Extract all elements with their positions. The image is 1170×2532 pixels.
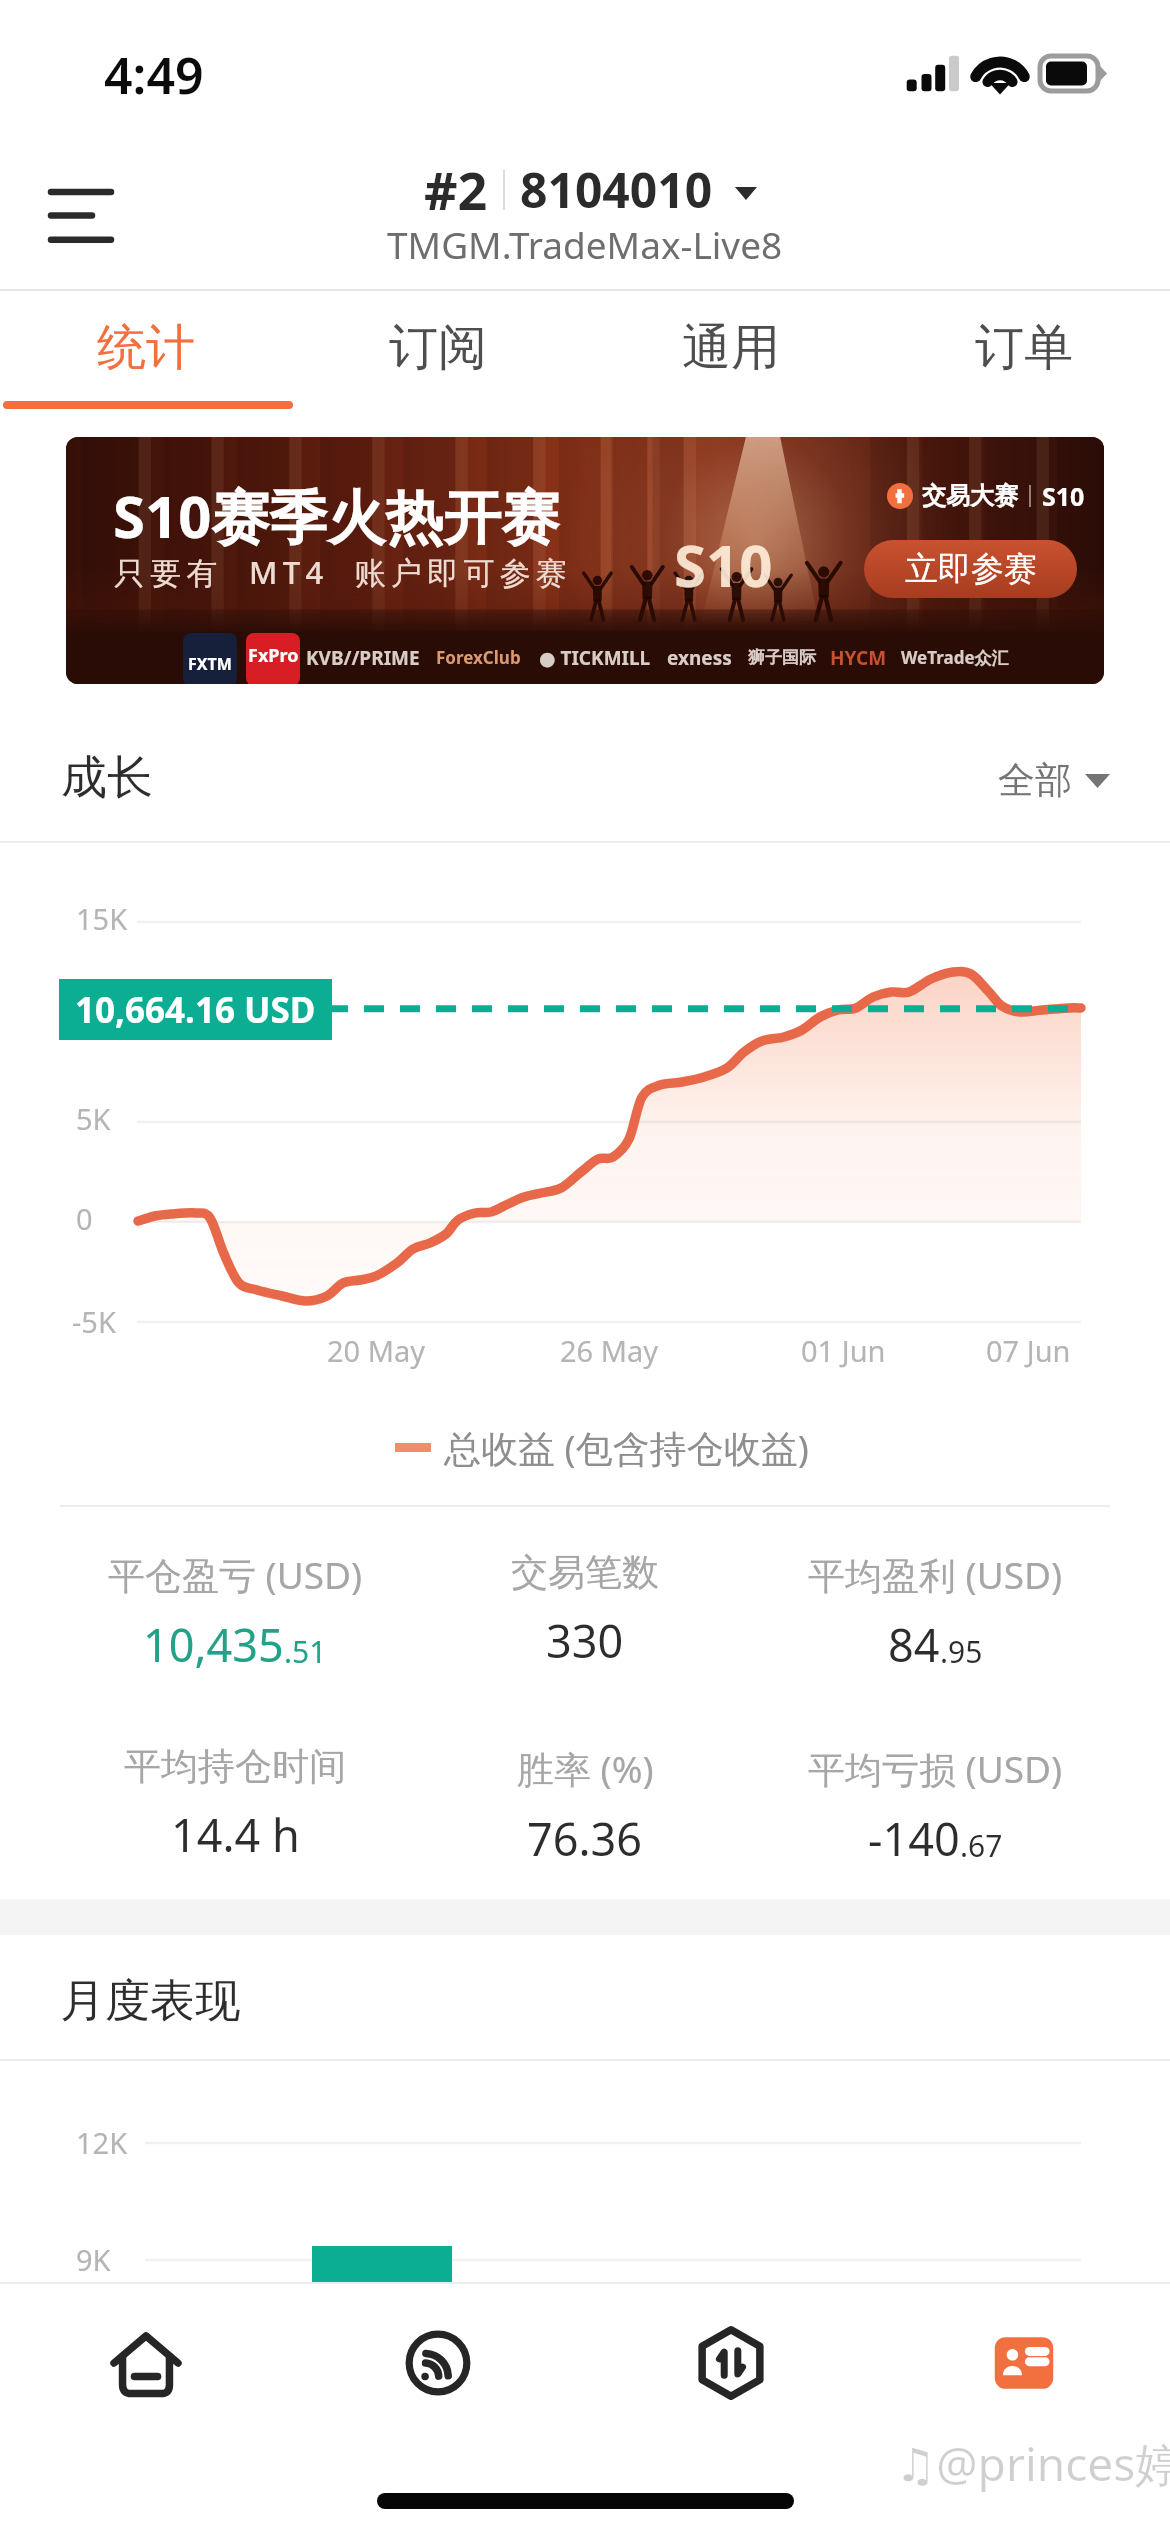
staticText: S10 xyxy=(674,525,773,604)
staticText: 月度表现 xyxy=(60,1973,240,2030)
staticText: 10,435 xyxy=(143,1614,284,1675)
staticText: 交易大赛 xyxy=(922,481,1018,511)
button[interactable]: #2 xyxy=(362,150,808,270)
staticText: 9K xyxy=(76,2240,111,2279)
staticText: 只要有 MT4 账户即可参赛 xyxy=(114,551,573,593)
staticText: TMGM.TradeMax-Live8 xyxy=(387,219,783,269)
staticText: 76.36 xyxy=(527,1808,643,1869)
staticText: 26 May xyxy=(560,1331,659,1370)
staticText: 平均盈利 (USD) xyxy=(808,1549,1063,1600)
staticText: 84 xyxy=(888,1614,940,1675)
staticText: 01 Jun xyxy=(801,1331,886,1370)
staticText: .67 xyxy=(960,1825,1003,1866)
staticText: 狮子国际 xyxy=(748,647,816,668)
staticText: -5K xyxy=(72,1302,116,1341)
staticText: 统计 xyxy=(97,317,195,379)
button[interactable]: 统计 xyxy=(0,288,292,408)
staticText: ForexClub xyxy=(436,646,521,669)
staticText: .95 xyxy=(940,1631,983,1672)
staticText: 全部 xyxy=(998,757,1072,804)
staticText: 胜率 (%) xyxy=(517,1743,654,1794)
button[interactable]: 订阅 xyxy=(292,288,584,408)
button[interactable]: S10赛季火热开赛 xyxy=(66,437,1104,684)
staticText: 平仓盈亏 (USD) xyxy=(108,1549,363,1600)
staticText: 总收益 (包含持仓收益) xyxy=(444,1422,809,1473)
button[interactable]: 立即参赛 xyxy=(864,540,1077,598)
button[interactable]: Trade xyxy=(584,2282,877,2442)
staticText: 15K xyxy=(76,899,128,938)
staticText: ♫@princes婷 xyxy=(895,2432,1170,2495)
button[interactable]: Profile xyxy=(877,2282,1170,2442)
staticText: 立即参赛 xyxy=(905,548,1037,590)
staticText: 4:49 xyxy=(104,41,204,109)
staticText: 330 xyxy=(546,1610,624,1671)
staticText: FXTM xyxy=(188,653,232,675)
staticText: S10 xyxy=(1042,479,1085,513)
staticText: 12K xyxy=(76,2123,128,2162)
button[interactable]: 通用 xyxy=(584,288,877,408)
staticText: 订单 xyxy=(975,317,1073,379)
staticText: 10,664.16 USD xyxy=(75,986,316,1034)
staticText: 通用 xyxy=(682,317,780,379)
button[interactable]: Home xyxy=(0,2282,292,2442)
staticText: 14.4 h xyxy=(171,1804,300,1865)
staticText: KVB//PRIME xyxy=(306,645,420,671)
button[interactable]: Menu xyxy=(30,160,134,272)
staticText: 成长 xyxy=(61,749,153,807)
staticText: 07 Jun xyxy=(986,1331,1071,1370)
staticText: 8104010 xyxy=(520,157,713,222)
staticText: 0 xyxy=(76,1199,93,1238)
staticText: exness xyxy=(667,645,732,671)
staticText: 平均持仓时间 xyxy=(124,1743,346,1790)
staticText: WeTrade众汇 xyxy=(901,646,1009,669)
staticText: S10赛季火热开赛 xyxy=(113,476,560,555)
button[interactable]: Signals xyxy=(292,2282,584,2442)
staticText: 订阅 xyxy=(389,317,487,379)
staticText: 交易笔数 xyxy=(511,1549,659,1596)
staticText: 平均亏损 (USD) xyxy=(808,1743,1063,1794)
staticText: .51 xyxy=(284,1631,327,1672)
staticText: ● TICKMILL xyxy=(539,645,651,671)
staticText: 20 May xyxy=(327,1331,426,1370)
button[interactable]: 全部 xyxy=(998,757,1110,804)
staticText: HYCM xyxy=(830,645,887,671)
staticText: 5K xyxy=(76,1099,111,1138)
button[interactable]: 订单 xyxy=(877,288,1170,408)
staticText: FxPro xyxy=(248,643,299,668)
staticText: #2 xyxy=(424,154,488,225)
staticText: -140 xyxy=(868,1808,960,1869)
